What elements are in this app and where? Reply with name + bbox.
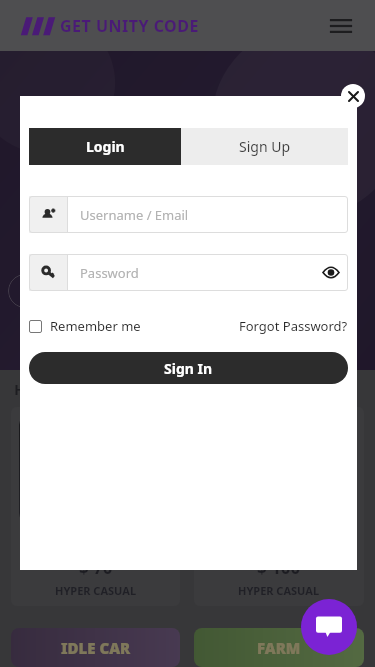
button[interactable]: Forgot Password?: [239, 317, 348, 335]
staticText: $ 70: [79, 556, 113, 579]
button[interactable]: GET UNITY CODE: [20, 15, 199, 37]
staticText: Sign Up: [239, 137, 291, 156]
button[interactable]: Menu: [327, 12, 355, 40]
staticText: FARM: [257, 638, 301, 658]
staticText: HYPER CASUAL GAMES: [14, 379, 181, 399]
button[interactable]: Username / Email: [29, 196, 348, 233]
staticText: $ 100: [257, 556, 301, 579]
button[interactable]: Sign Up: [181, 128, 348, 165]
staticText: GET UNITY CODE: [60, 15, 199, 37]
button[interactable]: Login: [29, 128, 181, 165]
button[interactable]: Open chat: [301, 599, 357, 655]
button[interactable]: Show password: [314, 254, 348, 291]
staticText: Username / Email: [80, 206, 348, 224]
staticText: HYPER CASUAL: [55, 583, 137, 598]
staticText: HYPER CASUAL: [238, 583, 320, 598]
button[interactable]: Close: [341, 84, 365, 108]
button[interactable]: GAME TITLE: [11, 407, 180, 606]
button[interactable]: IDLE CAR: [11, 628, 180, 667]
staticText: Login: [86, 137, 125, 156]
button[interactable]: Password: [29, 254, 348, 291]
button[interactable]: GAME TITLE: [194, 407, 364, 606]
button[interactable]: Remember me: [29, 317, 141, 335]
button[interactable]: FARM: [194, 628, 364, 667]
button[interactable]: Sign In: [29, 352, 348, 384]
staticText: IDLE CAR: [61, 638, 131, 658]
staticText: Sign In: [164, 359, 213, 378]
staticText: Password: [80, 264, 314, 282]
staticText: Remember me: [50, 317, 141, 335]
